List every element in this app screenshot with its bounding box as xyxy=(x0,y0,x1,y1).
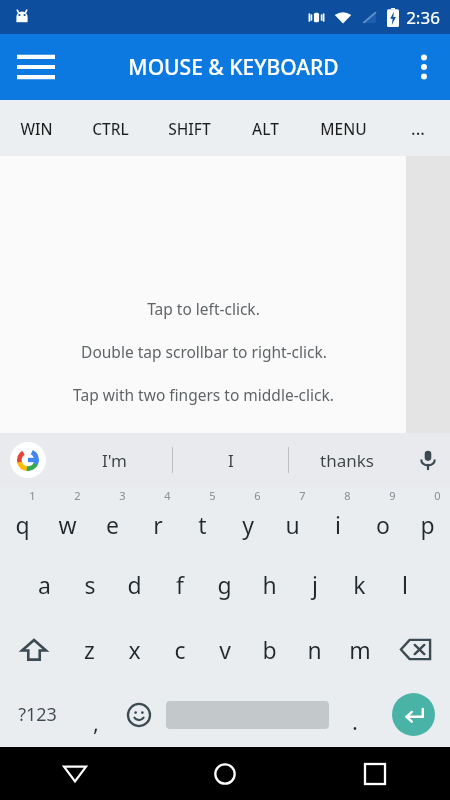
staticText: 0 xyxy=(434,488,441,503)
staticText: WIN xyxy=(20,118,53,139)
button[interactable]: I xyxy=(173,433,288,487)
button[interactable]: r xyxy=(135,487,180,552)
staticText: 8 xyxy=(344,488,351,503)
staticText: thanks xyxy=(320,449,374,472)
staticText: a xyxy=(38,569,51,600)
button[interactable]: c xyxy=(157,617,202,682)
staticText: l xyxy=(402,569,408,600)
button[interactable]: a xyxy=(22,552,67,617)
button[interactable]: t xyxy=(180,487,225,552)
staticText: ?123 xyxy=(18,702,57,727)
staticText: 2 xyxy=(74,488,81,503)
staticText: f xyxy=(176,569,184,600)
staticText: s xyxy=(84,569,96,600)
staticText: g xyxy=(217,569,232,600)
button[interactable]: CTRL xyxy=(72,100,149,156)
button[interactable]: e xyxy=(90,487,135,552)
button[interactable]: j xyxy=(292,552,337,617)
button[interactable]: Tap to left-click. xyxy=(0,156,406,433)
staticText: ALT xyxy=(252,118,279,139)
button[interactable]: SHIFT xyxy=(149,100,229,156)
button[interactable]: w xyxy=(45,487,90,552)
button[interactable]: s xyxy=(67,552,112,617)
staticText: u xyxy=(285,509,300,540)
button[interactable]: Backspace xyxy=(382,617,450,682)
button[interactable]: x xyxy=(112,617,157,682)
button[interactable]: Open navigation drawer xyxy=(8,39,64,95)
button[interactable]: Hide keyboard xyxy=(0,747,150,800)
staticText: MOUSE & KEYBOARD xyxy=(128,53,339,82)
button[interactable]: WIN xyxy=(0,100,72,156)
staticText: 3 xyxy=(119,488,126,503)
button[interactable]: g xyxy=(202,552,247,617)
staticText: x xyxy=(128,634,141,665)
button[interactable]: y xyxy=(225,487,270,552)
button[interactable]: m xyxy=(337,617,382,682)
button[interactable]: f xyxy=(157,552,202,617)
staticText: t xyxy=(198,509,207,540)
button[interactable]: I'm xyxy=(56,433,172,487)
button[interactable]: More options xyxy=(400,43,448,91)
button[interactable]: z xyxy=(67,617,112,682)
button[interactable]: Recent apps xyxy=(300,747,450,800)
button[interactable] xyxy=(161,682,333,747)
button[interactable]: ALT xyxy=(229,100,301,156)
button[interactable]: u xyxy=(270,487,315,552)
button[interactable]: Voice input xyxy=(406,438,450,482)
button[interactable]: MENU xyxy=(301,100,386,156)
staticText: I xyxy=(228,449,234,472)
button[interactable]: b xyxy=(247,617,292,682)
button[interactable]: l xyxy=(382,552,427,617)
staticText: 2:36 xyxy=(406,6,440,29)
staticText: v xyxy=(219,634,231,665)
staticText: ... xyxy=(411,117,425,140)
button[interactable]: Enter xyxy=(376,682,450,747)
staticText: h xyxy=(262,569,277,600)
button[interactable]: k xyxy=(337,552,382,617)
button[interactable]: . xyxy=(333,682,376,747)
button[interactable]: v xyxy=(202,617,247,682)
staticText: , xyxy=(93,707,99,737)
staticText: r xyxy=(153,509,163,540)
button[interactable]: Google xyxy=(10,442,46,478)
staticText: CTRL xyxy=(92,118,129,139)
button[interactable]: , xyxy=(75,682,116,747)
staticText: k xyxy=(353,569,366,600)
button[interactable]: i xyxy=(315,487,360,552)
staticText: j xyxy=(312,569,318,600)
button[interactable]: h xyxy=(247,552,292,617)
button[interactable]: o xyxy=(360,487,405,552)
button[interactable]: Shift xyxy=(0,617,67,682)
staticText: n xyxy=(307,634,322,665)
button[interactable]: q xyxy=(0,487,45,552)
staticText: . xyxy=(352,706,358,736)
button[interactable]: ?123 xyxy=(0,682,75,747)
staticText: q xyxy=(15,509,30,540)
button[interactable]: Home xyxy=(150,747,300,800)
staticText: SHIFT xyxy=(168,118,211,139)
staticText: Tap with two fingers to middle-click. xyxy=(73,384,334,405)
button[interactable]: ... xyxy=(386,100,450,156)
button[interactable]: d xyxy=(112,552,157,617)
button[interactable]: p xyxy=(405,487,450,552)
staticText: b xyxy=(262,634,277,665)
button[interactable]: thanks xyxy=(289,433,404,487)
button[interactable]: Emoji xyxy=(116,682,161,747)
staticText: m xyxy=(349,634,371,665)
staticText: 6 xyxy=(254,488,261,503)
staticText: 5 xyxy=(209,488,216,503)
staticText: y xyxy=(242,509,254,540)
staticText: w xyxy=(58,509,77,540)
staticText: I'm xyxy=(102,449,127,472)
staticText: Tap to left-click. xyxy=(147,298,260,319)
staticText: 4 xyxy=(164,488,171,503)
button[interactable]: n xyxy=(292,617,337,682)
staticText: z xyxy=(84,634,95,665)
staticText: p xyxy=(420,509,435,540)
staticText: d xyxy=(127,569,142,600)
staticText: 9 xyxy=(389,488,396,503)
staticText: 7 xyxy=(299,488,306,503)
staticText: i xyxy=(335,509,341,540)
staticText: o xyxy=(376,509,390,540)
